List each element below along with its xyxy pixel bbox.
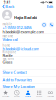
- staticText: Favourites: [2, 96, 10, 97]
- staticText: Recents: [14, 96, 20, 97]
- staticText: Glass: [2, 59, 12, 65]
- button[interactable]: Keypad: [34, 88, 45, 100]
- staticText: Ringtone: [2, 50, 16, 54]
- button[interactable]: Favourites: [0, 88, 11, 100]
- staticText: Hajia Badaki: [14, 15, 37, 20]
- staticText: Add to Favourites: [2, 77, 32, 82]
- staticText: h.badaki@example.com: [2, 29, 44, 34]
- staticText: FaceTime: [2, 34, 13, 38]
- button[interactable]: Edit: [44, 4, 55, 9]
- button[interactable]: Share My Location: [2, 84, 56, 89]
- staticText: Rustle: [2, 53, 12, 58]
- button[interactable]: h.badaki@example.com: [2, 30, 44, 34]
- staticText: mobile: [2, 22, 12, 26]
- button[interactable]: Share Contact: [2, 69, 56, 75]
- button[interactable]: Message: [41, 22, 47, 27]
- button[interactable]: Call: [49, 22, 54, 27]
- staticText: 9:41: [4, 1, 11, 4]
- staticText: h.badaki@icloud.com: [2, 46, 39, 51]
- staticText: Share My Location: [2, 84, 34, 89]
- button[interactable]: Voicemail: [45, 88, 56, 100]
- staticText: Contacts: [25, 96, 31, 97]
- staticText: Text Tone: [2, 57, 14, 60]
- staticText: +1 (555) 012-3456: [2, 25, 31, 30]
- button[interactable]: Add to Favourites: [2, 77, 56, 82]
- staticText: Video call: [2, 37, 18, 42]
- staticText: Voicemail: [47, 96, 53, 97]
- button[interactable]: Back: [1, 4, 16, 9]
- button[interactable]: h.badaki@icloud.com: [2, 47, 44, 51]
- staticText: Back: [5, 4, 14, 9]
- button[interactable]: Recents: [11, 88, 22, 100]
- button[interactable]: Glass: [2, 60, 32, 64]
- button[interactable]: +1 (555) 012-3456: [2, 25, 36, 29]
- button[interactable]: Rustle: [2, 53, 32, 57]
- staticText: Keypad: [36, 96, 42, 97]
- staticText: Edit: [47, 4, 53, 9]
- staticText: home: [2, 44, 10, 47]
- button[interactable]: Video call: [2, 37, 32, 41]
- button[interactable]: Contacts: [22, 88, 34, 100]
- staticText: Share Contact: [2, 69, 26, 75]
